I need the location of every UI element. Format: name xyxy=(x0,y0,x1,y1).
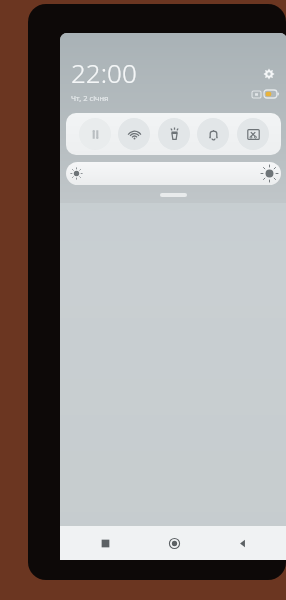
staticText: 22:00 xyxy=(71,55,137,90)
button[interactable]: Back xyxy=(218,526,266,560)
button[interactable]: Home xyxy=(150,526,198,560)
button[interactable]: Do not disturb xyxy=(197,118,229,150)
button[interactable]: Wi-Fi xyxy=(118,118,150,150)
staticText: Чт, 2 січня xyxy=(71,93,109,103)
button[interactable]: Brightness xyxy=(66,162,281,185)
button[interactable]: Recent apps xyxy=(81,526,129,560)
button[interactable]: Mobile data xyxy=(79,118,111,150)
button[interactable]: Flashlight xyxy=(158,118,190,150)
button[interactable]: Screenshot xyxy=(237,118,269,150)
button[interactable]: Expand panel xyxy=(160,193,187,197)
button[interactable]: Settings xyxy=(259,64,279,84)
